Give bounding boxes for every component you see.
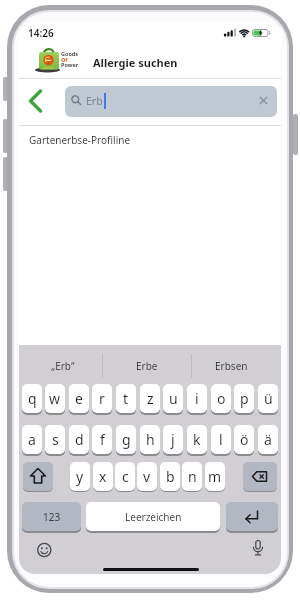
staticText: b (166, 467, 175, 486)
button[interactable]: p (234, 384, 254, 413)
staticText: u (169, 389, 178, 408)
staticText: h (146, 430, 155, 449)
staticText: m (208, 467, 222, 486)
button[interactable]: „Erb“ (23, 357, 103, 375)
staticText: n (188, 467, 197, 486)
staticText: „Erb“ (51, 359, 75, 373)
button[interactable]: a (22, 425, 42, 454)
button[interactable]: Erbe (107, 357, 187, 375)
staticText: x (99, 467, 107, 486)
staticText: y (76, 467, 84, 486)
button[interactable] (23, 462, 53, 491)
staticText: Leerzeichen (125, 510, 182, 524)
button[interactable] (36, 542, 53, 559)
button[interactable]: s (45, 425, 65, 454)
button[interactable] (226, 502, 278, 531)
staticText: Of (61, 56, 68, 63)
staticText: d (75, 430, 84, 449)
button[interactable]: g (116, 425, 136, 454)
button[interactable]: z (140, 384, 160, 413)
staticText: e (75, 389, 83, 408)
button[interactable] (65, 86, 277, 117)
staticText: q (28, 389, 37, 408)
button[interactable]: t (116, 384, 136, 413)
staticText: l (219, 430, 223, 449)
button[interactable]: c (115, 462, 135, 491)
button[interactable]: ü (258, 384, 278, 413)
staticText: Erbe (136, 359, 158, 373)
button[interactable]: i (187, 384, 207, 413)
staticText: w (49, 389, 61, 408)
button[interactable]: Erbsen (191, 357, 271, 375)
button[interactable]: v (137, 462, 157, 491)
button[interactable]: Leerzeichen (86, 502, 220, 531)
staticText: k (193, 430, 201, 449)
staticText: 14:26 (28, 26, 54, 40)
staticText: ö (240, 430, 249, 449)
button[interactable]: r (92, 384, 112, 413)
button[interactable]: e (69, 384, 89, 413)
staticText: s (52, 430, 59, 449)
button[interactable]: o (211, 384, 231, 413)
button[interactable]: ä (258, 425, 278, 454)
staticText: i (195, 389, 199, 408)
staticText: ä (264, 430, 272, 449)
button[interactable]: f (92, 425, 112, 454)
staticText: Gartenerbse-Profiline (29, 133, 131, 147)
button[interactable]: ö (234, 425, 254, 454)
staticText: Erbsen (215, 359, 248, 373)
button[interactable]: d (69, 425, 89, 454)
button[interactable]: n (182, 462, 202, 491)
button[interactable]: m (205, 462, 225, 491)
button[interactable]: j (163, 425, 183, 454)
button[interactable]: Gartenerbse-Profiline (19, 126, 281, 154)
button[interactable]: x (93, 462, 113, 491)
button[interactable] (256, 93, 271, 108)
button[interactable] (243, 462, 277, 491)
staticText: p (240, 389, 249, 408)
staticText: t (123, 389, 129, 408)
button[interactable]: w (45, 384, 65, 413)
staticText: c (122, 467, 129, 486)
staticText: 123 (43, 510, 61, 524)
staticText: o (217, 389, 226, 408)
staticText: v (143, 467, 151, 486)
staticText: ü (264, 389, 273, 408)
button[interactable]: u (163, 384, 183, 413)
button[interactable]: k (187, 425, 207, 454)
staticText: Erb (86, 94, 103, 108)
staticText: g (122, 430, 131, 449)
staticText: z (147, 389, 154, 408)
button[interactable]: q (22, 384, 42, 413)
staticText: Power (61, 61, 79, 68)
staticText: j (171, 430, 175, 449)
staticText: a (28, 430, 36, 449)
button[interactable]: h (140, 425, 160, 454)
button[interactable]: y (70, 462, 90, 491)
staticText: Goods (61, 50, 79, 57)
button[interactable]: l (211, 425, 231, 454)
button[interactable] (250, 539, 266, 559)
staticText: r (99, 389, 105, 408)
button[interactable]: 123 (22, 502, 81, 531)
button[interactable] (24, 88, 50, 114)
button[interactable]: b (160, 462, 180, 491)
staticText: f (100, 430, 105, 449)
staticText: Allergie suchen (93, 55, 178, 70)
